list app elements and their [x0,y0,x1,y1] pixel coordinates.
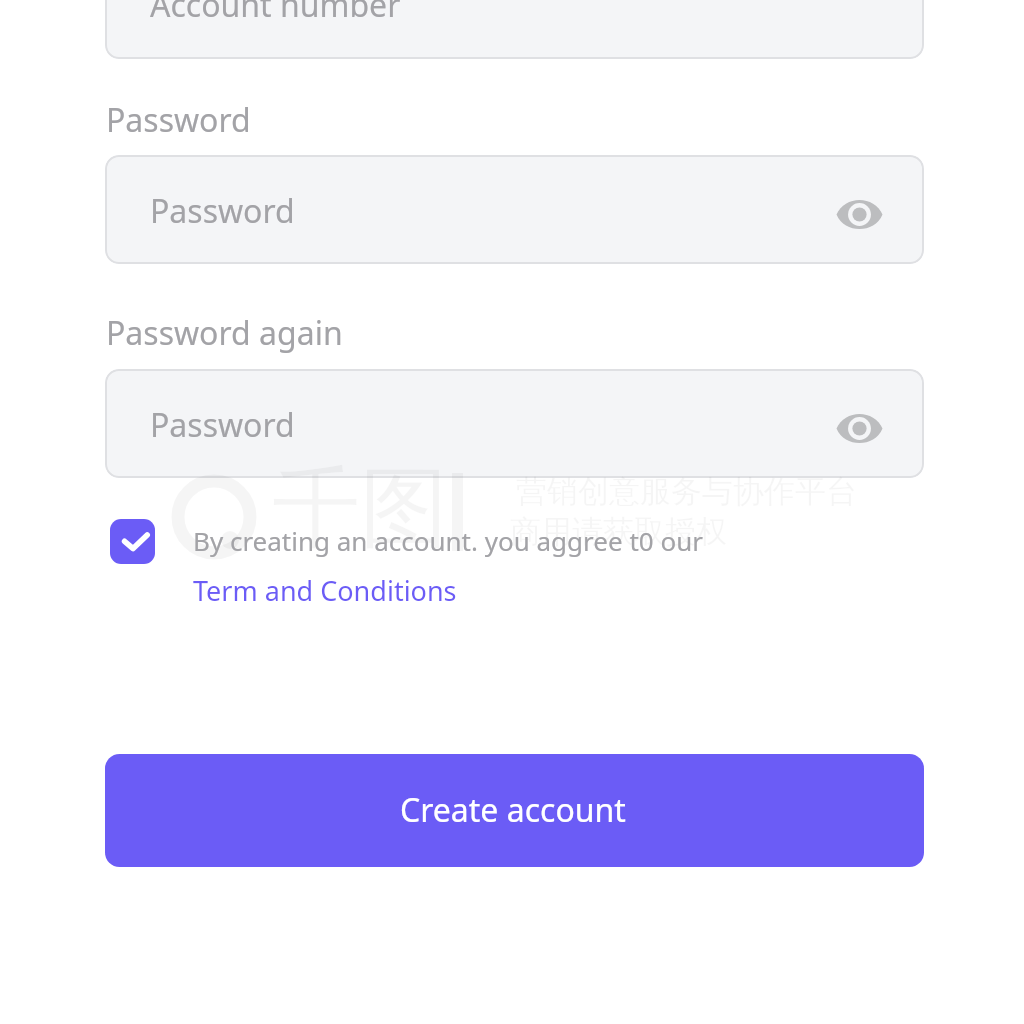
staticText: Term and Conditions [193,572,457,609]
button[interactable]: Show password [836,200,883,229]
button[interactable]: Password [105,369,924,478]
button[interactable]: Term and Conditions [193,572,457,609]
staticText: Password [150,403,295,447]
button[interactable]: Account number [105,0,924,59]
staticText: Account number [150,0,401,27]
staticText: 营销创意服务与协作平台 [516,472,857,511]
staticText: Password [106,98,251,142]
staticText: By creating an account. you aggree t0 ou… [193,523,703,558]
staticText: Create account [400,788,626,832]
button[interactable]: Create account [105,754,924,867]
staticText: 千图 [272,453,448,564]
button[interactable]: Agree to terms and conditions [110,519,155,564]
button[interactable]: Password [105,155,924,264]
button[interactable]: Show password [836,414,883,443]
staticText: Password again [106,311,343,355]
staticText: 商用请获取授权 [510,512,727,551]
staticText: Password [150,189,295,233]
